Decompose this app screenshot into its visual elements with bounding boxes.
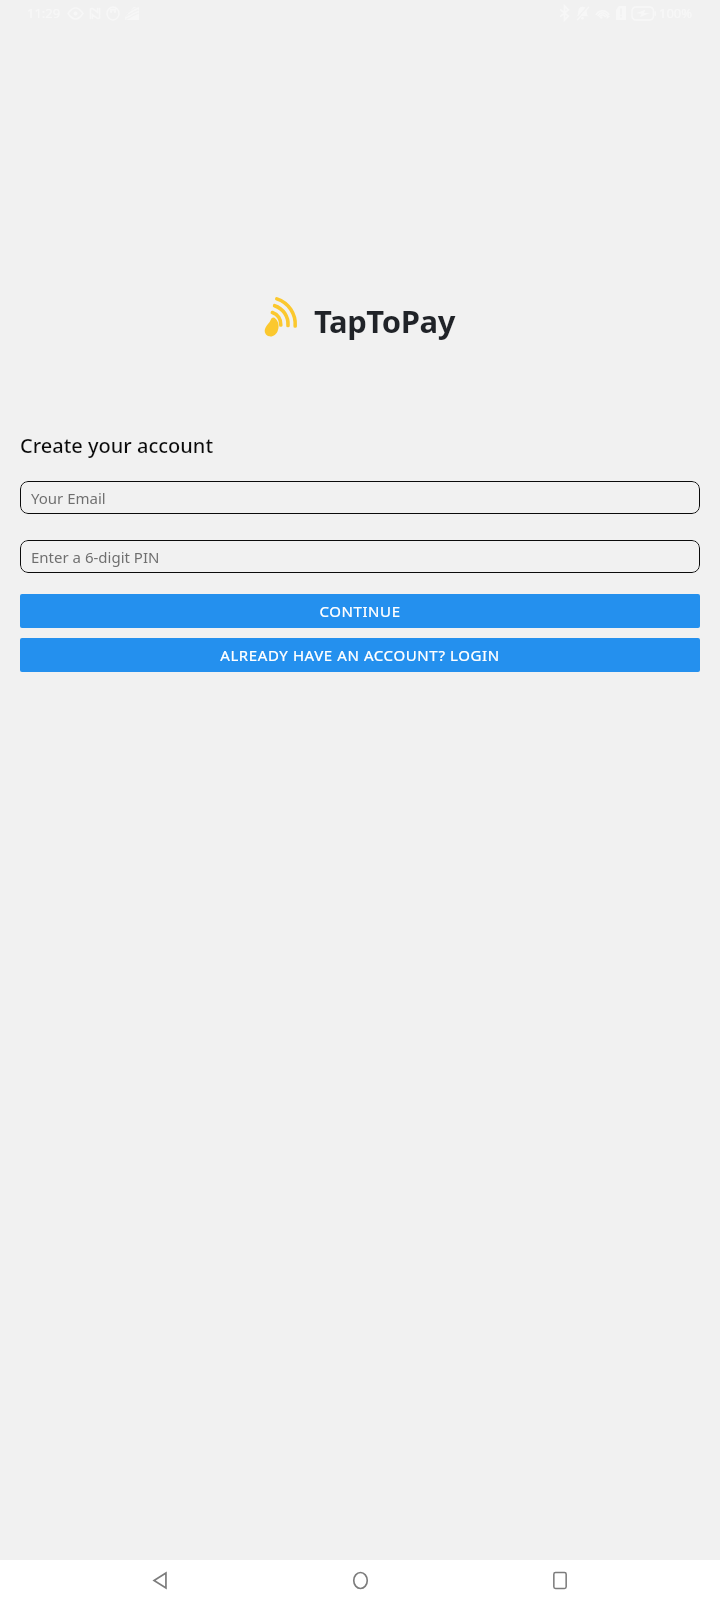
button[interactable]: Recent apps — [520, 1560, 600, 1600]
button[interactable]: ALREADY HAVE AN ACCOUNT? LOGIN — [20, 638, 700, 672]
button[interactable]: Enter a 6-digit PIN — [20, 540, 700, 573]
staticText: Enter a 6-digit PIN — [31, 547, 160, 567]
staticText: CONTINUE — [319, 601, 401, 621]
button[interactable]: Your Email — [20, 481, 700, 514]
staticText: Create your account — [20, 432, 214, 459]
button[interactable]: Back — [120, 1560, 200, 1600]
staticText: TapToPay — [314, 300, 455, 342]
button[interactable]: Home — [320, 1560, 400, 1600]
staticText: ALREADY HAVE AN ACCOUNT? LOGIN — [220, 645, 500, 665]
staticText: Your Email — [31, 488, 106, 508]
button[interactable]: CONTINUE — [20, 594, 700, 628]
